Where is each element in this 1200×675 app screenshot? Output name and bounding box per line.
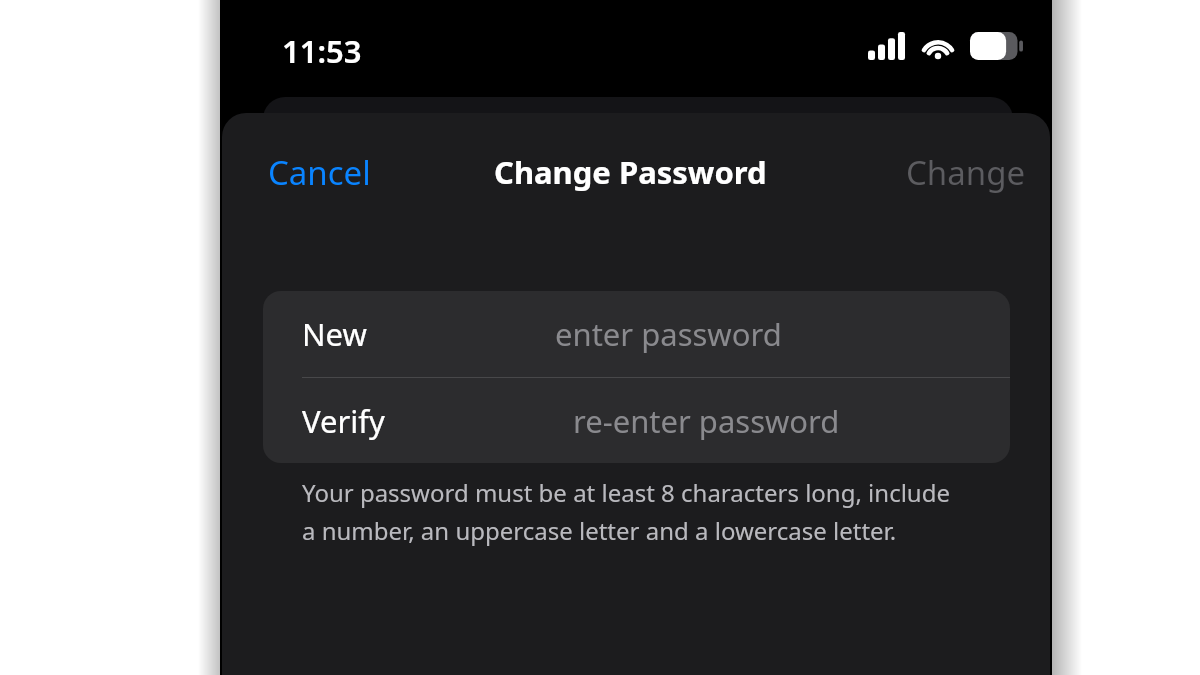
staticText: enter password (555, 313, 782, 355)
staticText: a number, an uppercase letter and a lowe… (302, 514, 897, 547)
staticText: 11:53 (282, 30, 362, 72)
staticText: Verify (302, 400, 385, 442)
staticText: Change (906, 150, 1026, 195)
button[interactable]: New (263, 291, 1010, 377)
button[interactable]: Change (902, 144, 1030, 201)
staticText: re-enter password (573, 400, 840, 442)
staticText: Change Password (494, 151, 767, 193)
button[interactable]: Cancel (264, 144, 375, 201)
staticText: Cancel (268, 150, 371, 195)
staticText: New (302, 313, 367, 355)
button[interactable]: Verify (263, 378, 1010, 463)
staticText: Your password must be at least 8 charact… (302, 476, 950, 509)
